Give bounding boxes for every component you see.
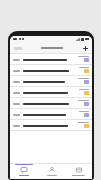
button[interactable]: Contacts — [38, 164, 65, 179]
button[interactable]: Add — [81, 44, 89, 52]
button[interactable] — [10, 98, 92, 109]
button[interactable] — [10, 109, 92, 120]
button[interactable] — [10, 87, 92, 98]
button[interactable] — [10, 120, 92, 131]
button[interactable] — [10, 65, 92, 76]
button[interactable] — [10, 54, 92, 65]
button[interactable] — [10, 76, 92, 87]
button[interactable]: Messages — [10, 164, 38, 179]
button[interactable]: Menu — [13, 46, 23, 51]
button[interactable]: Settings — [65, 164, 92, 179]
